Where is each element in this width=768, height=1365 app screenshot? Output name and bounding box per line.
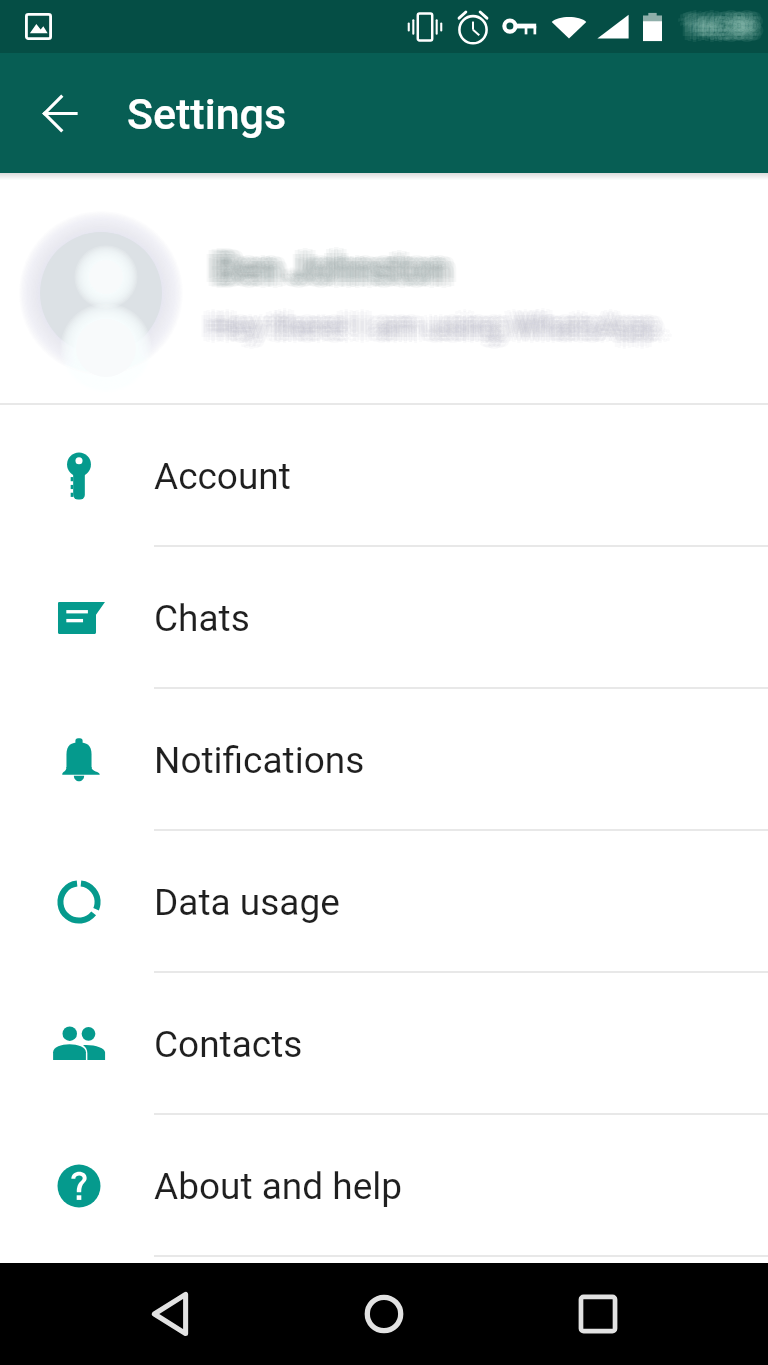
- button[interactable]: Chats: [0, 547, 768, 689]
- staticText: Ben Johnston: [217, 244, 452, 289]
- staticText: 14:38: [686, 15, 755, 47]
- staticText: Ben Johnston: [210, 247, 445, 292]
- staticText: Contacts: [154, 1023, 303, 1066]
- staticText: 14:38: [686, 11, 755, 43]
- staticText: Ben Johnston: [211, 250, 446, 295]
- button[interactable]: Ben Johnston: [0, 180, 768, 403]
- staticText: 14:38: [681, 16, 750, 48]
- staticText: Hey there! I am using WhatsApp.: [202, 308, 658, 345]
- staticText: Hey there! I am using WhatsApp.: [209, 302, 665, 339]
- staticText: Hey there! I am using WhatsApp.: [206, 305, 662, 342]
- staticText: Hey there! I am using WhatsApp.: [219, 308, 675, 345]
- staticText: 14:38: [690, 11, 759, 43]
- button[interactable]: Contacts: [0, 973, 768, 1115]
- staticText: Hey there! I am using WhatsApp.: [212, 311, 668, 348]
- staticText: Ben Johnston: [221, 247, 456, 292]
- staticText: 14:38: [683, 8, 752, 40]
- staticText: Ben Johnston: [217, 250, 452, 295]
- staticText: Ben Johnston: [222, 243, 457, 288]
- staticText: Chats: [154, 597, 250, 640]
- staticText: Data usage: [154, 881, 340, 924]
- staticText: 14:38: [686, 17, 755, 49]
- staticText: Ben Johnston: [219, 242, 454, 287]
- staticText: 14:38: [691, 16, 760, 48]
- button[interactable]: About and help: [0, 1115, 768, 1257]
- staticText: Ben Johnston: [214, 241, 449, 286]
- staticText: 14:38: [678, 15, 747, 47]
- staticText: Hey there! I am using WhatsApp.: [209, 304, 665, 341]
- staticText: 14:38: [694, 15, 763, 47]
- staticText: 14:38: [696, 11, 765, 43]
- staticText: Settings: [127, 89, 287, 139]
- button[interactable]: Back: [126, 1270, 214, 1358]
- staticText: Hey there! I am using WhatsApp.: [214, 313, 670, 350]
- staticText: Ben Johnston: [214, 251, 449, 296]
- staticText: Ben Johnston: [206, 251, 441, 296]
- staticText: Hey there! I am using WhatsApp.: [201, 304, 657, 341]
- staticText: Hey there! I am using WhatsApp.: [214, 303, 670, 340]
- staticText: 14:38: [691, 6, 760, 38]
- staticText: Hey there! I am using WhatsApp.: [205, 308, 661, 345]
- staticText: 14:38: [686, 7, 755, 39]
- staticText: Notifications: [154, 739, 365, 782]
- staticText: Ben Johnston: [204, 247, 439, 292]
- staticText: Hey there! I am using WhatsApp.: [204, 303, 660, 340]
- staticText: 14:38: [693, 11, 762, 43]
- staticText: Ben Johnston: [214, 243, 449, 288]
- staticText: Hey there! I am using WhatsApp.: [209, 314, 665, 351]
- staticText: 14:38: [682, 11, 751, 43]
- staticText: Ben Johnston: [218, 247, 453, 292]
- staticText: Ben Johnston: [222, 251, 457, 296]
- button[interactable]: Notifications: [0, 689, 768, 831]
- staticText: 14:38: [679, 11, 748, 43]
- staticText: Ben Johnston: [224, 247, 459, 292]
- button[interactable]: Recent apps: [554, 1270, 642, 1358]
- staticText: About and help: [154, 1165, 403, 1208]
- staticText: Hey there! I am using WhatsApp.: [216, 308, 672, 345]
- staticText: Ben Johnston: [219, 252, 454, 297]
- staticText: 14:38: [694, 7, 763, 39]
- staticText: Account: [154, 455, 291, 498]
- staticText: 14:38: [689, 8, 758, 40]
- staticText: Ben Johnston: [214, 247, 449, 292]
- staticText: Ben Johnston: [209, 252, 444, 297]
- staticText: Hey there! I am using WhatsApp.: [217, 312, 673, 349]
- button[interactable]: Home: [340, 1270, 428, 1358]
- staticText: Hey there! I am using WhatsApp.: [217, 304, 673, 341]
- staticText: 14:38: [683, 14, 752, 46]
- staticText: Hey there! I am using WhatsApp.: [209, 312, 665, 349]
- staticText: Hey there! I am using WhatsApp.: [201, 312, 657, 349]
- staticText: Ben Johnston: [211, 244, 446, 289]
- staticText: Hey there! I am using WhatsApp.: [209, 308, 665, 345]
- staticText: Ben Johnston: [209, 242, 444, 287]
- staticText: Hey there! I am using WhatsApp.: [199, 308, 655, 345]
- staticText: Ben Johnston: [206, 243, 441, 288]
- staticText: 14:38: [676, 11, 745, 43]
- button[interactable]: Data usage: [0, 831, 768, 973]
- staticText: Ben Johnston: [214, 253, 449, 298]
- staticText: Hey there! I am using WhatsApp.: [206, 311, 662, 348]
- button[interactable]: Navigate up: [22, 75, 98, 151]
- staticText: Ben Johnston: [207, 247, 442, 292]
- staticText: Hey there! I am using WhatsApp.: [213, 308, 669, 345]
- staticText: Hey there! I am using WhatsApp.: [204, 313, 660, 350]
- staticText: Hey there! I am using WhatsApp.: [212, 305, 668, 342]
- staticText: 14:38: [678, 7, 747, 39]
- staticText: 14:38: [686, 5, 755, 37]
- button[interactable]: Account: [0, 405, 768, 547]
- staticText: 14:38: [681, 6, 750, 38]
- staticText: 14:38: [689, 14, 758, 46]
